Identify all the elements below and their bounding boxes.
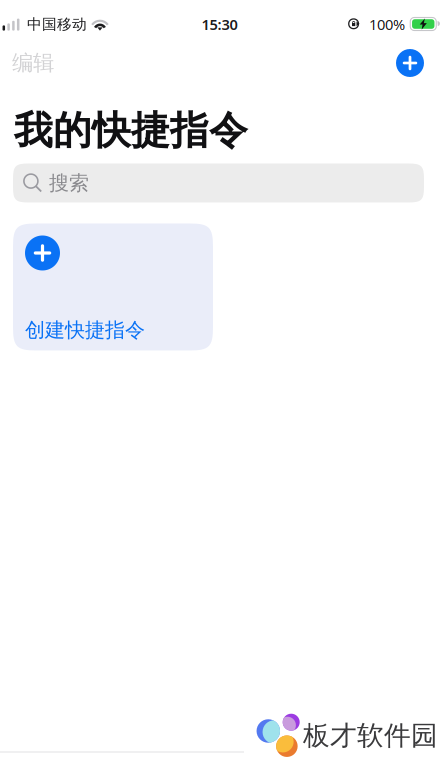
button[interactable]: 创建快捷指令	[13, 223, 213, 350]
staticText: 编辑	[12, 50, 54, 76]
staticText: 搜索	[49, 171, 89, 195]
staticText: 创建快捷指令	[25, 318, 145, 342]
button[interactable]: 搜索	[13, 163, 424, 202]
staticText: 板才软件园	[303, 719, 438, 752]
staticText: 15:30	[201, 14, 237, 34]
button[interactable]: New Shortcut	[388, 41, 432, 85]
staticText: 100%	[369, 14, 405, 34]
button[interactable]: 编辑	[0, 41, 78, 85]
staticText: 我的快捷指令	[14, 107, 248, 154]
staticText: 中国移动	[27, 15, 87, 33]
